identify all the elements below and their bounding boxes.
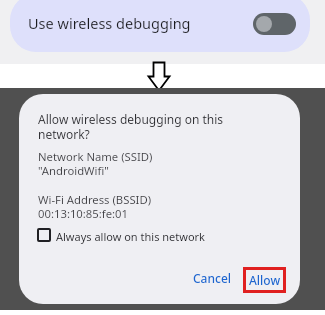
button[interactable] — [37, 228, 51, 242]
staticText: Cancel — [193, 270, 232, 286]
staticText: Wi-Fi Address (BSSID) — [38, 192, 152, 207]
button[interactable] — [253, 13, 296, 35]
button[interactable]: Allow — [243, 267, 286, 293]
staticText: Allow wireless debugging on this network… — [38, 111, 224, 143]
staticText: Network Name (SSID) — [38, 149, 153, 164]
staticText: Use wireless debugging — [28, 13, 191, 33]
staticText: Allow — [249, 272, 281, 288]
staticText: 00:13:10:85:fe:01 — [38, 206, 129, 221]
button[interactable]: Cancel — [187, 266, 237, 290]
staticText: "AndroidWifi" — [38, 163, 109, 178]
button[interactable]: Use wireless debugging — [10, 0, 310, 52]
staticText: Always allow on this network — [56, 229, 205, 244]
